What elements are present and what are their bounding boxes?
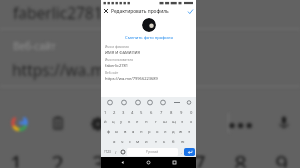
button[interactable]: 3	[119, 108, 128, 117]
button[interactable]: ф	[104, 127, 113, 137]
staticText: ИМЯ И ФАМИЛИЯ	[105, 50, 141, 55]
staticText: с	[129, 139, 132, 145]
button[interactable]: /	[113, 148, 119, 156]
staticText: ж	[179, 129, 183, 135]
button[interactable]: 0	[186, 108, 196, 117]
staticText: о	[156, 129, 159, 135]
staticText: 0	[190, 110, 193, 116]
staticText: ю	[181, 139, 185, 145]
button[interactable]: ц	[109, 117, 117, 127]
button[interactable]: г	[151, 117, 160, 127]
button[interactable]: з	[178, 117, 187, 127]
button[interactable]: 5	[137, 108, 146, 117]
button[interactable]: Имя и фамилия	[105, 45, 192, 58]
staticText: Русский	[146, 150, 159, 154]
staticText: 2	[113, 110, 116, 116]
staticText: й	[104, 119, 107, 125]
button[interactable]: б	[169, 137, 178, 147]
button[interactable]: 2	[110, 108, 119, 117]
button[interactable]: х	[187, 117, 196, 127]
button[interactable]: ш	[160, 117, 169, 127]
staticText: д	[172, 129, 175, 135]
button[interactable]: а	[129, 127, 137, 137]
staticText: Веб-сайт	[13, 39, 56, 53]
staticText: faberlic2781	[13, 2, 103, 23]
button[interactable]: ь	[160, 137, 169, 147]
button[interactable]: н	[142, 117, 151, 127]
staticText: к	[128, 119, 131, 125]
button[interactable]: к	[125, 117, 133, 127]
button[interactable]: Русский	[127, 148, 178, 156]
staticText: р	[148, 129, 151, 135]
button[interactable]: я	[110, 137, 118, 147]
staticText: з	[181, 119, 184, 125]
button[interactable]: Имя пользователя	[105, 58, 192, 71]
button[interactable]: .	[179, 148, 184, 156]
button[interactable]: Done	[185, 6, 196, 16]
staticText: https://wa.me/79966223689	[105, 76, 158, 81]
button[interactable]: ж	[177, 127, 185, 137]
button[interactable]: Enter	[184, 148, 195, 156]
button[interactable]: у	[117, 117, 125, 127]
staticText: и	[145, 139, 148, 145]
staticText: Сменить фото профиля	[125, 35, 173, 41]
button[interactable]: Сменить фото профиля	[123, 34, 175, 42]
button[interactable]: 6	[146, 108, 156, 117]
button[interactable]: Recents	[170, 158, 179, 167]
button[interactable]: р	[145, 127, 153, 137]
button[interactable]: Close	[101, 6, 111, 16]
button[interactable]: ч	[118, 137, 126, 147]
button[interactable]: ?123	[102, 148, 113, 156]
staticText: ф	[107, 129, 111, 135]
staticText: Редактировать профиль	[111, 8, 169, 15]
staticText: ч	[121, 139, 124, 145]
button[interactable]: Веб-сайт	[105, 71, 192, 84]
button[interactable]: 8	[166, 108, 176, 117]
button[interactable]: е	[133, 117, 142, 127]
staticText: ш	[163, 119, 167, 125]
staticText: е	[136, 119, 139, 125]
staticText: 9	[180, 110, 183, 116]
button[interactable]: о	[153, 127, 161, 137]
staticText: б	[172, 139, 175, 145]
button[interactable]: Back	[118, 158, 127, 167]
staticText: 8	[170, 110, 173, 116]
button[interactable]: т	[151, 137, 160, 147]
button[interactable]: 4	[128, 108, 137, 117]
button[interactable]: Emoji	[119, 148, 126, 156]
button[interactable]: и	[142, 137, 151, 147]
staticText: 1	[104, 110, 107, 116]
button[interactable]: й	[101, 117, 109, 127]
staticText: г	[155, 119, 157, 125]
staticText: х	[190, 119, 193, 125]
staticText: 4	[131, 110, 134, 116]
staticText: ь	[163, 139, 166, 145]
staticText: Имя пользователя	[105, 58, 134, 62]
staticText: щ	[172, 119, 176, 125]
button[interactable]: с	[126, 137, 134, 147]
button[interactable]: в	[121, 127, 129, 137]
button[interactable]: д	[169, 127, 177, 137]
button[interactable]: п	[137, 127, 145, 137]
button[interactable]: 9	[176, 108, 186, 117]
button[interactable]: ю	[178, 137, 187, 147]
button[interactable]: л	[161, 127, 169, 137]
staticText: 5	[140, 110, 143, 116]
button[interactable]: ы	[113, 127, 121, 137]
button[interactable]: 7	[156, 108, 166, 117]
staticText: Имя и фамилия	[105, 45, 129, 49]
staticText: ы	[115, 129, 119, 135]
button[interactable]: м	[134, 137, 142, 147]
staticText: у	[120, 119, 123, 125]
staticText: н	[145, 119, 148, 125]
button[interactable]: 1	[101, 108, 110, 117]
staticText: 3	[122, 110, 125, 116]
staticText: Веб-сайт	[105, 71, 119, 75]
button[interactable]: щ	[169, 117, 178, 127]
staticText: 6	[150, 110, 153, 116]
staticText: э	[188, 129, 191, 135]
button[interactable]: Home	[144, 158, 153, 167]
staticText: л	[164, 129, 167, 135]
button[interactable]: э	[185, 127, 193, 137]
staticText: ц	[112, 119, 115, 125]
